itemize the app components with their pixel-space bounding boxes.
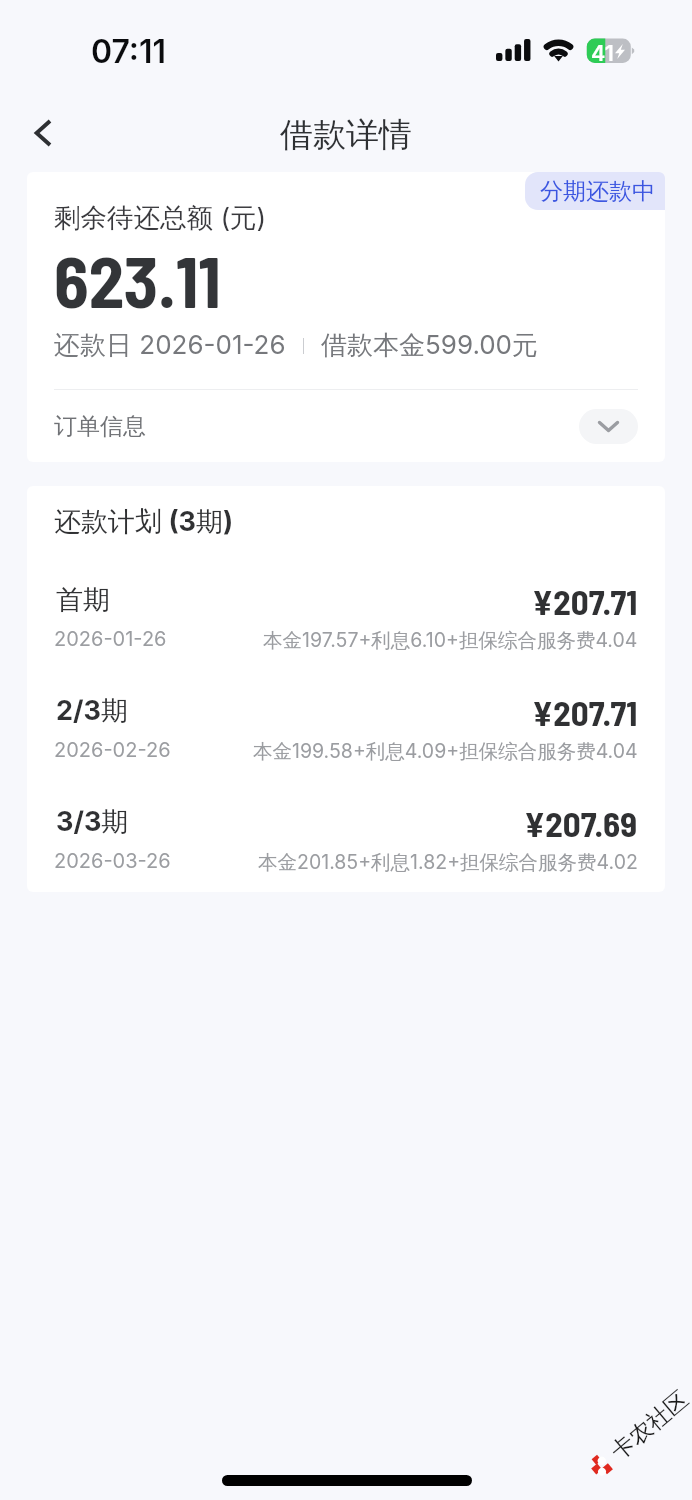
- staticText: 3/3期: [56, 805, 129, 839]
- staticText: 本金201.85+利息1.82+担保综合服务费4.02: [258, 850, 638, 875]
- staticText: 订单信息: [54, 412, 146, 441]
- staticText: ¥207.71: [532, 691, 638, 733]
- staticText: 623.11: [54, 237, 221, 322]
- staticText: 首期: [56, 583, 110, 617]
- staticText: 2026-02-26: [54, 738, 171, 762]
- staticText: ¥207.71: [532, 580, 638, 622]
- button[interactable]: Back: [16, 106, 70, 160]
- button[interactable]: 3/3期: [27, 804, 665, 886]
- staticText: 07:11: [91, 32, 167, 71]
- staticText: 分期还款中: [540, 177, 655, 206]
- staticText: 剩余待还总额 (元): [54, 201, 267, 235]
- staticText: ¥207.69: [524, 802, 638, 844]
- staticText: 借款本金599.00元: [321, 329, 539, 362]
- staticText: 借款详情: [280, 114, 412, 156]
- staticText: 2/3期: [56, 694, 128, 728]
- staticText: 2026-03-26: [54, 849, 171, 873]
- staticText: 本金199.58+利息4.09+担保综合服务费4.04: [253, 739, 638, 764]
- button[interactable]: 2/3期: [27, 693, 665, 775]
- staticText: 还款计划 (3期): [54, 505, 234, 539]
- button[interactable]: 分期还款中: [525, 172, 665, 210]
- staticText: 41: [591, 40, 614, 66]
- button[interactable]: 首期: [27, 582, 665, 664]
- staticText: 卡农社区: [605, 1385, 692, 1466]
- staticText: 还款日 2026-01-26: [54, 329, 286, 362]
- staticText: 2026-01-26: [54, 627, 167, 651]
- button[interactable]: 订单信息: [27, 390, 665, 462]
- staticText: 本金197.57+利息6.10+担保综合服务费4.04: [263, 628, 638, 653]
